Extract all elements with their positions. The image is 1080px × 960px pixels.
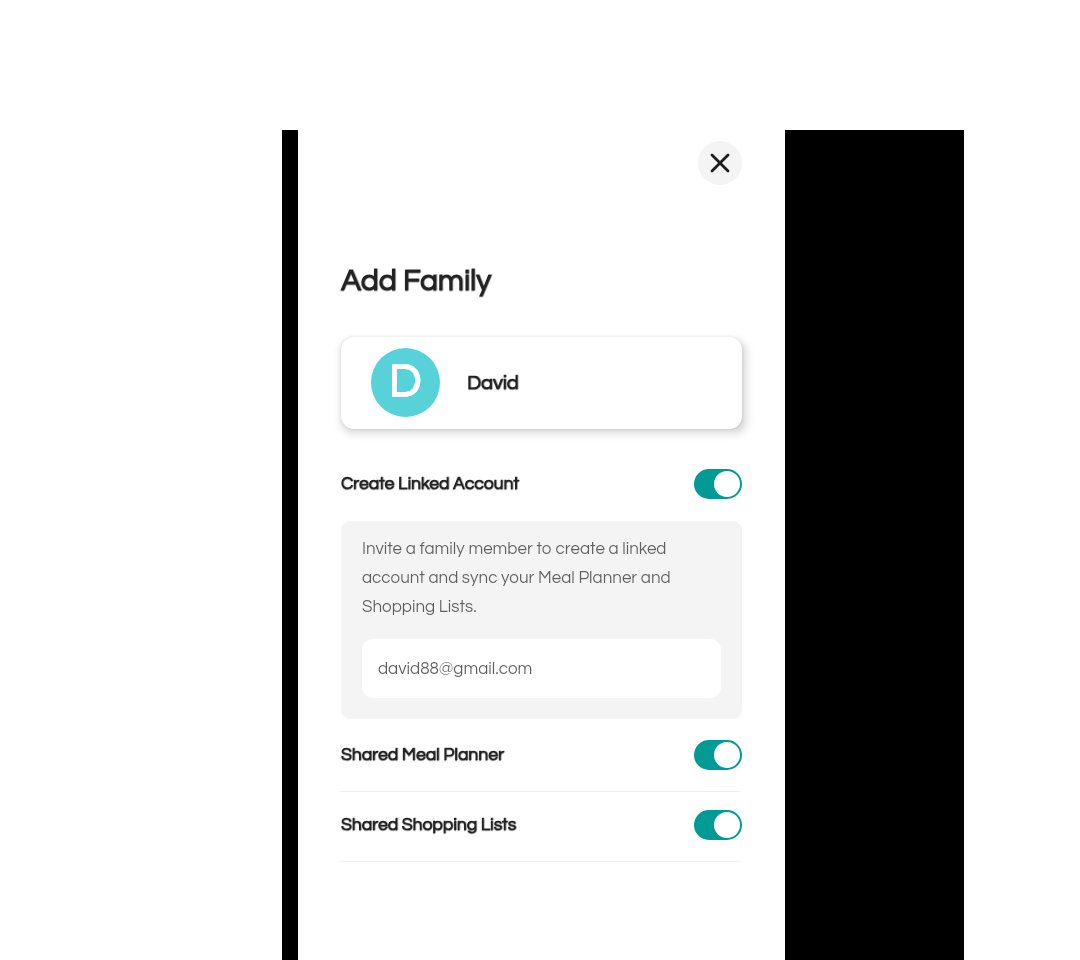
button[interactable]: D — [341, 337, 742, 429]
staticText: Create Linked Account — [341, 476, 519, 494]
staticText: David — [467, 374, 519, 395]
staticText: Shared Meal Planner — [341, 747, 504, 765]
staticText: Create Linked Account — [342, 475, 520, 493]
button[interactable]: Close — [698, 141, 742, 185]
staticText: Invite a family member to create a linke… — [362, 540, 674, 616]
staticText: David — [468, 373, 520, 394]
staticText: Shared Meal Planner — [342, 746, 505, 764]
staticText: Shared Meal Planner — [341, 746, 504, 764]
button[interactable]: Shared Shopping Lists — [341, 795, 742, 855]
button[interactable]: Toggle — [694, 740, 742, 770]
staticText: Shared Shopping Lists — [342, 816, 518, 834]
staticText: Create Linked Account — [341, 475, 519, 493]
staticText: Shared Shopping Lists — [341, 816, 517, 834]
staticText: Add Family — [342, 265, 493, 296]
button[interactable]: Create Linked Account — [341, 454, 742, 514]
staticText: Add Family — [341, 265, 492, 296]
staticText: David — [467, 373, 519, 394]
button[interactable]: Toggle — [694, 469, 742, 499]
staticText: david88@gmail.com — [378, 660, 533, 678]
staticText: D — [389, 358, 422, 405]
button[interactable]: Shared Meal Planner — [341, 725, 742, 785]
staticText: Add Family — [341, 266, 492, 297]
button[interactable]: Toggle — [694, 810, 742, 840]
button[interactable]: david88@gmail.com — [362, 639, 721, 698]
staticText: Shared Shopping Lists — [341, 817, 517, 835]
